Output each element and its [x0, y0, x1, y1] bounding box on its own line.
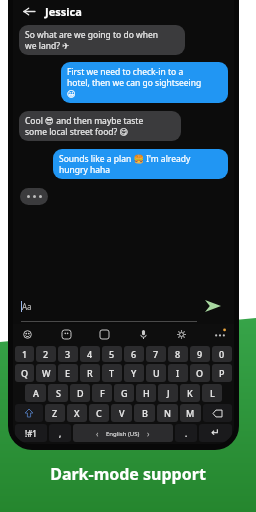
staticText: Cool 😎 and then maybe taste some local s… [25, 115, 144, 137]
button[interactable]: W [36, 364, 56, 382]
button[interactable]: H [136, 384, 156, 402]
staticText: So what are we going to do when we land?… [25, 29, 159, 51]
button[interactable]: A [25, 384, 46, 402]
button[interactable]: Settings [174, 327, 188, 341]
button[interactable]: X [67, 404, 87, 422]
button[interactable]: Typing [20, 188, 48, 205]
staticText: B [142, 407, 148, 419]
button[interactable]: Sounds like a plan 🍔 I'm already hungry … [53, 149, 228, 179]
staticText: I [176, 367, 180, 379]
staticText: L [210, 387, 215, 399]
button[interactable]: R [80, 364, 100, 382]
button[interactable]: Z [45, 404, 65, 422]
staticText: F [100, 387, 105, 399]
button[interactable]: First we need to check-in to a hotel, th… [61, 62, 228, 103]
staticText: M [186, 407, 195, 419]
staticText: C [96, 407, 102, 419]
staticText: N [164, 407, 171, 419]
staticText: U [153, 367, 160, 379]
staticText: › [147, 428, 150, 439]
staticText: 2 [43, 348, 49, 360]
button[interactable]: . [175, 424, 197, 442]
button[interactable]: V [111, 404, 132, 422]
button[interactable]: P [212, 364, 232, 382]
button[interactable]: Emoji [20, 327, 34, 341]
staticText: ↵ [211, 427, 220, 439]
button[interactable]: 7 [146, 346, 166, 362]
button[interactable]: O [190, 364, 210, 382]
button[interactable]: GIF [97, 327, 111, 341]
button[interactable]: U [146, 364, 166, 382]
button[interactable]: B [134, 404, 155, 422]
staticText: V [119, 407, 125, 419]
staticText: Q [21, 367, 29, 379]
button[interactable]: J [158, 384, 178, 402]
button[interactable]: C [89, 404, 109, 422]
button[interactable]: More [213, 327, 227, 341]
button[interactable]: 6 [124, 346, 144, 362]
staticText: Y [131, 367, 137, 379]
staticText: A [33, 387, 39, 399]
staticText: English (US) [106, 430, 140, 438]
staticText: 8 [175, 348, 181, 360]
staticText: J [167, 387, 170, 399]
staticText: P [219, 367, 225, 379]
button[interactable]: , [49, 424, 71, 442]
staticText: G [121, 387, 128, 399]
staticText: 0 [219, 348, 225, 360]
button[interactable]: 8 [168, 346, 188, 362]
button[interactable]: G [114, 384, 134, 402]
staticText: 5 [109, 348, 115, 360]
button[interactable]: I [168, 364, 188, 382]
button[interactable]: S [48, 384, 68, 402]
button[interactable]: 4 [80, 346, 100, 362]
button[interactable]: Y [124, 364, 144, 382]
button[interactable]: T [102, 364, 122, 382]
staticText: O [196, 367, 204, 379]
staticText: W [42, 367, 51, 379]
button[interactable]: E [58, 364, 78, 382]
button[interactable]: 1 [15, 346, 34, 362]
button[interactable]: Cool 😎 and then maybe taste some local s… [19, 111, 181, 141]
button[interactable]: 5 [102, 346, 122, 362]
staticText: 3 [65, 348, 71, 360]
staticText: K [187, 387, 193, 399]
button[interactable]: So what are we going to do when we land?… [19, 25, 185, 55]
staticText: Jessica [45, 4, 82, 19]
staticText: R [87, 367, 93, 379]
staticText: D [77, 387, 84, 399]
staticText: , [59, 428, 62, 439]
staticText: Z [52, 407, 58, 419]
button[interactable]: Back [19, 1, 39, 21]
button[interactable]: L [202, 384, 222, 402]
button[interactable]: D [70, 384, 90, 402]
button[interactable]: Voice input [136, 327, 150, 341]
button[interactable]: 3 [58, 346, 78, 362]
staticText: T [109, 367, 115, 379]
button[interactable]: K [180, 384, 200, 402]
button[interactable]: 0 [212, 346, 232, 362]
button[interactable]: M [180, 404, 201, 422]
button[interactable]: Backspace [203, 404, 232, 422]
button[interactable]: !#1 [15, 424, 47, 442]
staticText: First we need to check-in to a hotel, th… [67, 66, 202, 99]
staticText: Dark-mode support [50, 463, 206, 485]
staticText: 6 [131, 348, 137, 360]
button[interactable]: Q [15, 364, 34, 382]
button[interactable]: Aa [21, 301, 200, 312]
button[interactable]: Stickers [59, 327, 73, 341]
button[interactable]: ‹ [73, 424, 173, 442]
button[interactable]: F [92, 384, 112, 402]
button[interactable]: N [157, 404, 178, 422]
staticText: H [143, 387, 150, 399]
staticText: Aa [22, 301, 32, 312]
button[interactable]: Shift [15, 404, 43, 422]
staticText: ‹ [96, 428, 99, 439]
button[interactable]: Enter [199, 424, 232, 442]
button[interactable]: 2 [36, 346, 56, 362]
button[interactable]: 9 [190, 346, 210, 362]
staticText: Sounds like a plan 🍔 I'm already hungry … [59, 153, 191, 175]
staticText: . [185, 428, 188, 439]
staticText: X [74, 407, 80, 419]
button[interactable]: Send [200, 293, 226, 319]
